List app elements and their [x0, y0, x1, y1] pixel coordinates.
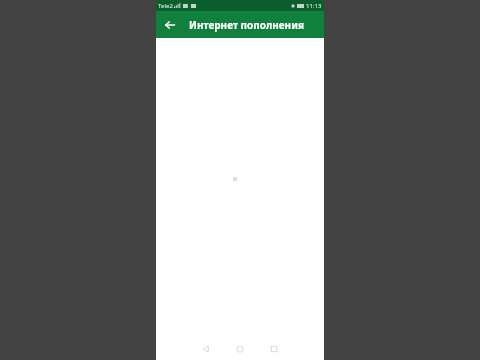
- staticText: Tele2: [158, 2, 173, 10]
- staticText: Интернет пополнения: [189, 18, 304, 32]
- button[interactable]: Back: [156, 11, 183, 38]
- staticText: 11:13: [306, 2, 322, 10]
- button[interactable]: Back: [189, 338, 223, 360]
- button[interactable]: Recents: [257, 338, 291, 360]
- button[interactable]: Home: [223, 338, 257, 360]
